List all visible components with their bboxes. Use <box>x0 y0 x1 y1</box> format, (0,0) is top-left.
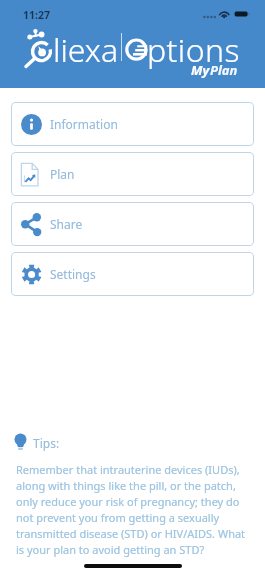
staticText: Remember that intrauterine devices (IUDs… <box>16 462 254 557</box>
button[interactable]: Plan <box>11 152 254 196</box>
button[interactable]: Settings <box>11 252 254 296</box>
staticText: liexa <box>53 28 119 72</box>
staticText: Information <box>50 116 118 132</box>
staticText: My <box>191 61 210 79</box>
staticText: Plan <box>50 166 75 182</box>
staticText: ptions <box>147 28 240 72</box>
staticText: Plan <box>210 61 238 79</box>
button[interactable]: Share <box>11 202 254 246</box>
staticText: 11:27 <box>23 8 50 22</box>
staticText: Share <box>50 216 83 232</box>
button[interactable]: Information <box>11 102 254 146</box>
staticText: Settings <box>50 266 96 282</box>
staticText: Tips: <box>33 435 60 451</box>
